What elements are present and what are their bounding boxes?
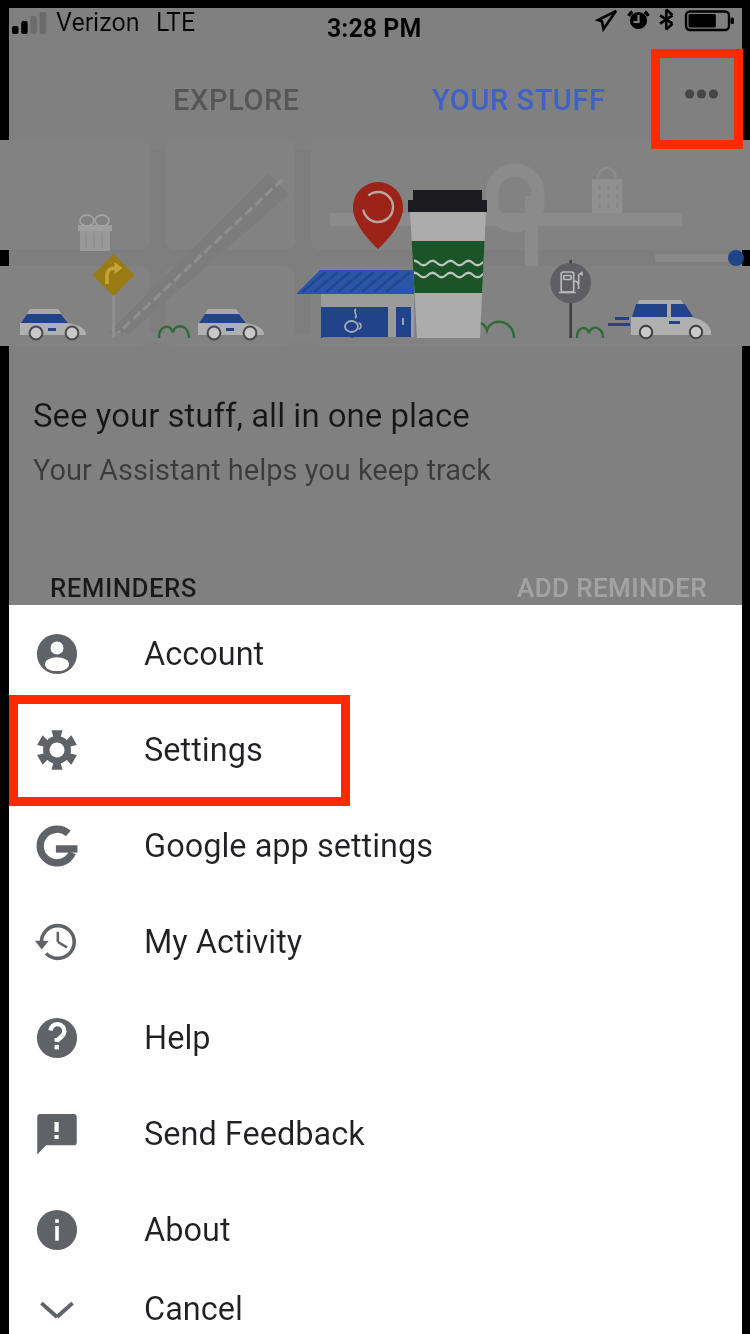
staticText: Your Assistant helps you keep track xyxy=(33,453,491,487)
staticText: About xyxy=(144,1211,231,1249)
staticText: Google app settings xyxy=(144,827,434,865)
button[interactable]: Send Feedback xyxy=(9,1086,742,1182)
button[interactable]: EXPLORE xyxy=(9,49,464,150)
button[interactable]: Cancel xyxy=(9,1278,742,1334)
button[interactable]: Settings xyxy=(9,702,742,798)
staticText: Verizon xyxy=(56,8,140,37)
staticText: 3:28 PM xyxy=(327,14,422,43)
button[interactable]: Account xyxy=(9,606,742,702)
staticText: REMINDERS xyxy=(50,573,197,603)
button[interactable]: ADD REMINDER xyxy=(517,573,707,603)
staticText: See your stuff, all in one place xyxy=(33,396,470,435)
button[interactable]: Google app settings xyxy=(9,798,742,894)
staticText: My Activity xyxy=(144,923,303,961)
button[interactable]: Help xyxy=(9,990,742,1086)
button[interactable]: My Activity xyxy=(9,894,742,990)
staticText: Send Feedback xyxy=(144,1115,365,1153)
staticText: EXPLORE xyxy=(173,83,300,117)
staticText: LTE xyxy=(156,8,196,37)
button[interactable]: More options xyxy=(651,49,742,150)
button[interactable]: About xyxy=(9,1182,742,1278)
staticText: Account xyxy=(144,635,265,673)
staticText: Help xyxy=(144,1019,211,1057)
staticText: YOUR STUFF xyxy=(432,83,606,117)
staticText: Settings xyxy=(144,731,263,769)
button[interactable]: YOUR STUFF xyxy=(464,49,651,150)
staticText: Cancel xyxy=(144,1290,243,1328)
